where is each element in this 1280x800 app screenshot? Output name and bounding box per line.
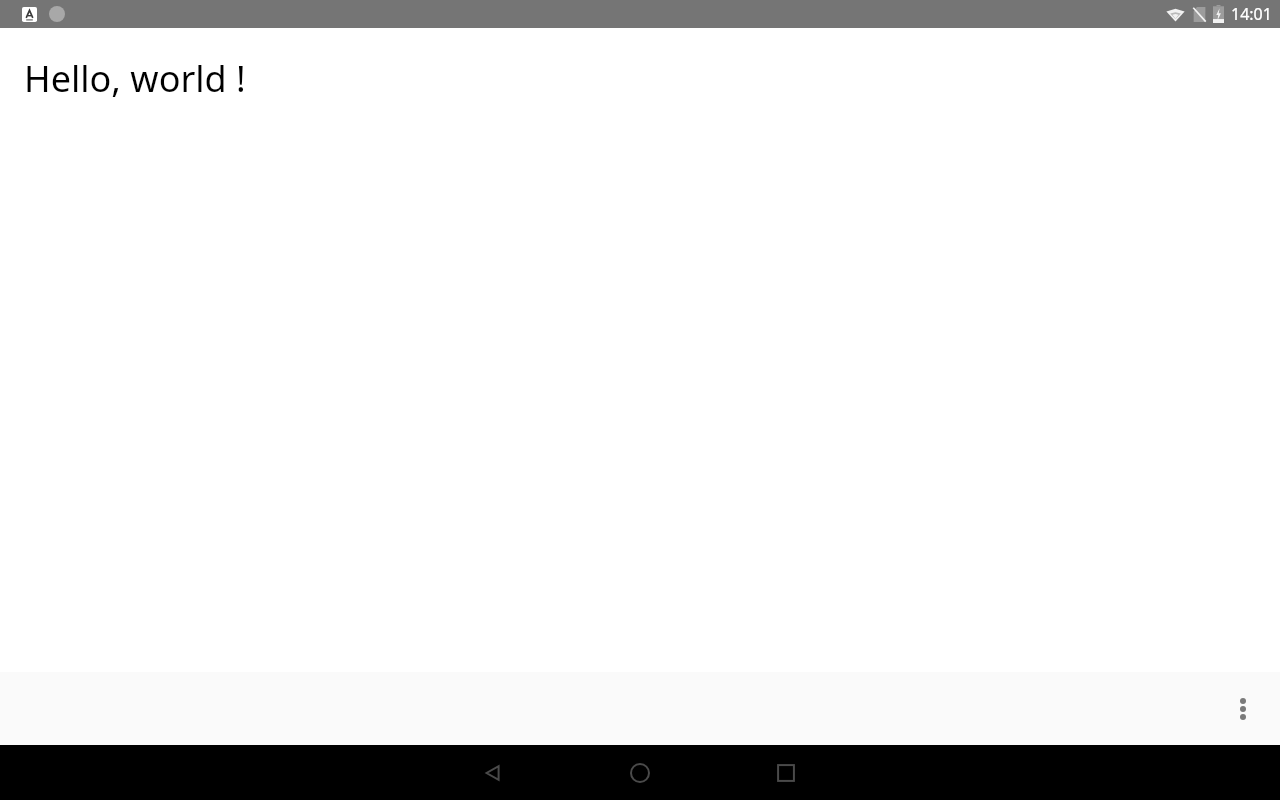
button[interactable]: Recent apps (762, 749, 810, 797)
other: Battery charging (1213, 5, 1224, 23)
button[interactable]: Back (469, 749, 517, 797)
staticText: Hello, world ! (24, 54, 246, 103)
other: No SIM card (1193, 6, 1206, 23)
button[interactable]: Home (616, 749, 664, 797)
button[interactable]: More options (1219, 685, 1267, 733)
other: Wi-Fi connected (1166, 7, 1185, 22)
staticText: 14:01 (1231, 3, 1272, 25)
